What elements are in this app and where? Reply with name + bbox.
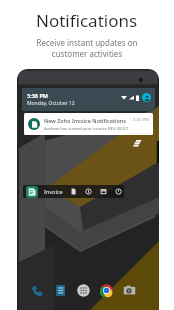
button[interactable]: Shortcut (99, 187, 108, 196)
button[interactable]: Chrome (98, 282, 115, 299)
staticText: Notifications (36, 9, 138, 32)
staticText: 3:36 PM (27, 92, 49, 99)
button[interactable]: Shortcut (84, 187, 93, 196)
button[interactable]: Shortcut (114, 187, 123, 196)
button[interactable]: Invoice (23, 185, 124, 198)
staticText: Andrew has viewed your invoice INV-00327 (44, 126, 129, 132)
button[interactable]: Messages (52, 282, 69, 299)
staticText: Invoice (44, 188, 63, 195)
button[interactable]: All apps (75, 282, 92, 299)
staticText: New Zoho Invoice Notifications (44, 117, 133, 124)
button[interactable]: Phone (29, 282, 46, 299)
button[interactable]: Shortcut (69, 187, 78, 196)
button[interactable]: Camera (121, 282, 138, 299)
staticText: Monday, October 12 (27, 100, 75, 107)
staticText: Receive instant updates on customer acti… (36, 37, 138, 59)
button[interactable]: Profile (142, 93, 151, 102)
staticText: 3:32 PM (133, 117, 149, 123)
button[interactable]: New Zoho Invoice Notifications (24, 113, 153, 135)
